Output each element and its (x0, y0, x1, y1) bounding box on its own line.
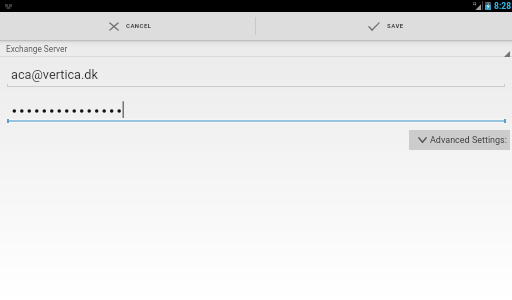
button[interactable]: CANCEL (0, 12, 255, 40)
staticText: Exchange Server (6, 44, 68, 54)
staticText: CANCEL (126, 22, 152, 29)
button[interactable]: aca@vertica.dk (0, 66, 512, 87)
staticText: Advanced Settings: (430, 135, 507, 146)
button[interactable] (0, 100, 512, 123)
staticText: SAVE (387, 22, 404, 29)
staticText: 8:28 (494, 1, 512, 11)
staticText: aca@vertica.dk (11, 67, 98, 82)
button[interactable]: Exchange Server (0, 40, 512, 57)
button[interactable]: SAVE (256, 12, 512, 40)
button[interactable]: Advanced Settings: (409, 130, 510, 150)
